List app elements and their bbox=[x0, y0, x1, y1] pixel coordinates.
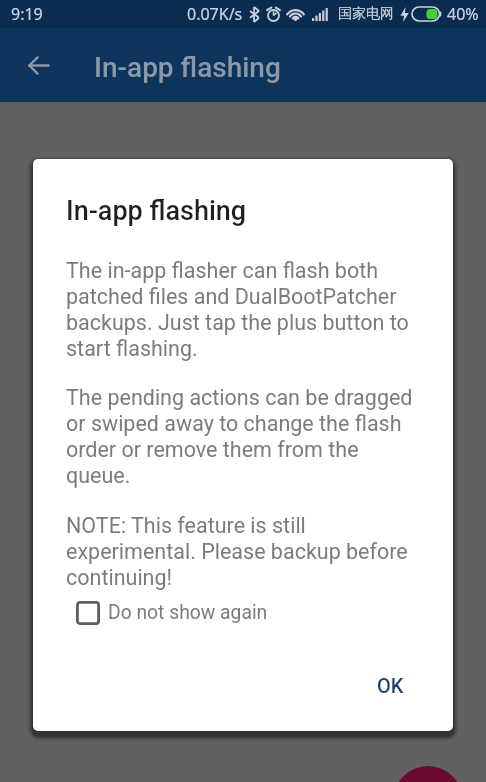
staticText: OK bbox=[377, 674, 404, 697]
staticText: The pending actions can be dragged or sw… bbox=[66, 385, 424, 488]
staticText: 9:19 bbox=[11, 3, 43, 25]
button[interactable]: Add flash item bbox=[393, 766, 463, 782]
button[interactable]: Navigate up bbox=[14, 41, 62, 89]
staticText: Do not show again bbox=[108, 601, 268, 624]
staticText: NOTE: This feature is still experimental… bbox=[66, 513, 424, 590]
staticText: In-app flashing bbox=[66, 195, 247, 227]
staticText: 40% bbox=[447, 3, 479, 25]
staticText: 国家电网 bbox=[338, 5, 394, 23]
staticText: The in-app flasher can flash both patche… bbox=[66, 258, 422, 361]
staticText: 0.07K/s bbox=[187, 3, 243, 25]
button[interactable]: Do not show again bbox=[67, 592, 268, 633]
button[interactable]: OK bbox=[361, 664, 420, 707]
staticText: In-app flashing bbox=[94, 51, 281, 84]
